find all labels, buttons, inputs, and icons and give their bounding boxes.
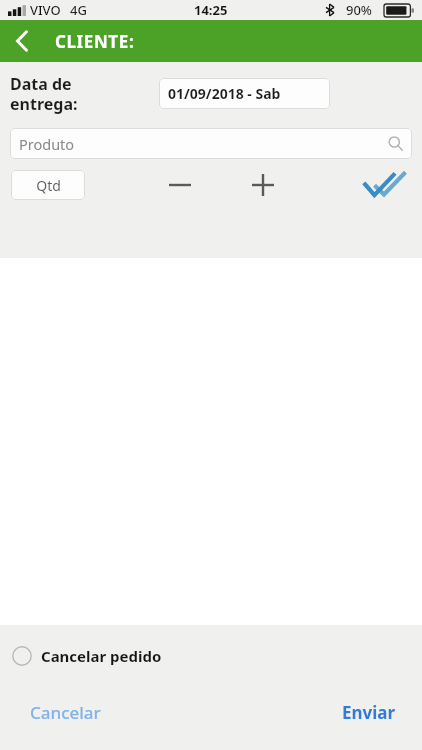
staticText: VIVO [30,1,61,19]
button[interactable]: Back [0,20,44,62]
staticText: 14:25 [194,1,228,19]
staticText: Enviar [342,701,396,724]
staticText: Qtd [36,176,61,195]
staticText: 01/09/2018 - Sab [168,84,281,103]
button[interactable]: Produto [10,128,412,159]
button[interactable]: Qtd [11,170,85,200]
staticText: Produto [19,134,75,154]
staticText: CLIENTE: [55,30,135,53]
button[interactable]: Decrease quantity [156,161,204,209]
staticText: Cancelar [30,701,101,724]
staticText: 90% [346,1,372,19]
button[interactable]: Confirm item [360,161,408,209]
button[interactable]: 01/09/2018 - Sab [159,78,330,109]
button[interactable]: Increase quantity [239,161,287,209]
button[interactable]: Cancelar [22,695,109,730]
button[interactable]: Enviar [334,695,404,730]
staticText: Cancelar pedido [41,646,162,666]
staticText: Data de entrega: [10,73,78,114]
staticText: 4G [70,1,87,19]
button[interactable]: Cancelar pedido [0,625,422,687]
